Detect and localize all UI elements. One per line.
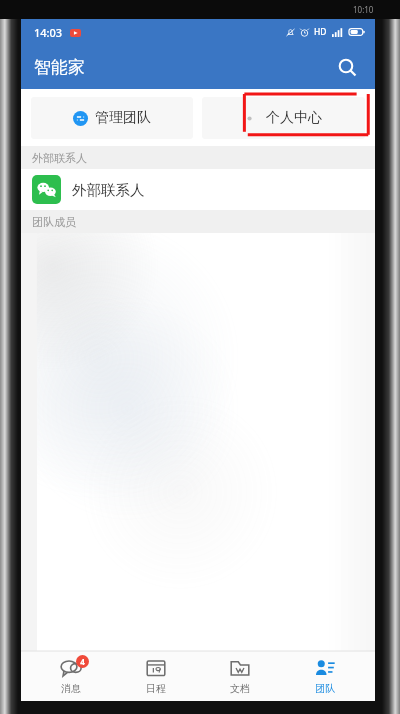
button[interactable]: 日程 [121, 651, 191, 701]
staticText: 团队成员 [32, 215, 76, 229]
button[interactable]: 外部联系人 [21, 169, 375, 210]
staticText: 智能家 [34, 57, 85, 78]
staticText: 14:03 [34, 25, 63, 40]
staticText: 文档 [230, 682, 250, 695]
button[interactable]: 团队 [290, 651, 360, 701]
staticText: 外部联系人 [32, 151, 87, 165]
button[interactable]: Search [329, 49, 365, 85]
staticText: 个人中心 [266, 109, 322, 127]
staticText: 消息 [61, 682, 81, 695]
button[interactable]: 个人中心 [202, 97, 365, 139]
button[interactable]: 文档 [205, 651, 275, 701]
staticText: HD [314, 26, 327, 38]
button[interactable]: 管理团队 [31, 97, 193, 139]
button[interactable]: 4 [36, 651, 106, 701]
staticText: 10:10 [353, 4, 374, 15]
staticText: 团队 [315, 682, 335, 695]
staticText: 外部联系人 [72, 181, 145, 199]
staticText: 日程 [146, 682, 166, 695]
staticText: 4 [80, 656, 85, 667]
staticText: 管理团队 [95, 109, 151, 127]
